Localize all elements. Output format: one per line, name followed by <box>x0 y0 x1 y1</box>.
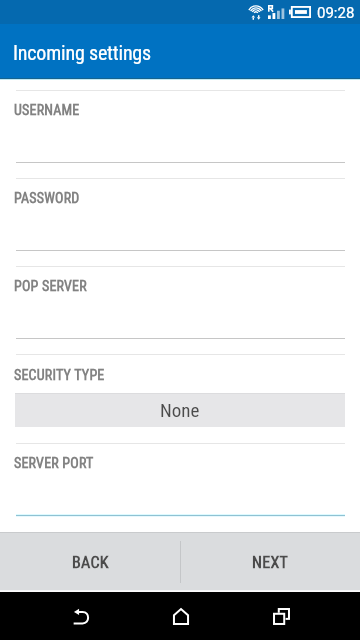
button[interactable]: Recent apps <box>231 592 331 640</box>
staticText: SERVER PORT <box>14 455 94 471</box>
staticText: NEXT <box>252 553 289 572</box>
button[interactable]: None <box>15 393 345 427</box>
staticText: POP SERVER <box>14 278 87 294</box>
staticText: BACK <box>72 553 109 572</box>
staticText: USERNAME <box>14 102 80 118</box>
staticText: None <box>160 399 200 421</box>
staticText: 09:28 <box>317 4 355 22</box>
button[interactable]: Home <box>131 592 231 640</box>
staticText: SECURITY TYPE <box>14 367 105 383</box>
staticText: PASSWORD <box>14 190 80 206</box>
button[interactable]: BACK <box>0 532 180 592</box>
button[interactable]: Incoming settings <box>0 24 360 78</box>
button[interactable]: NEXT <box>180 532 360 592</box>
staticText: Incoming settings <box>13 41 151 64</box>
button[interactable]: Back <box>31 592 131 640</box>
